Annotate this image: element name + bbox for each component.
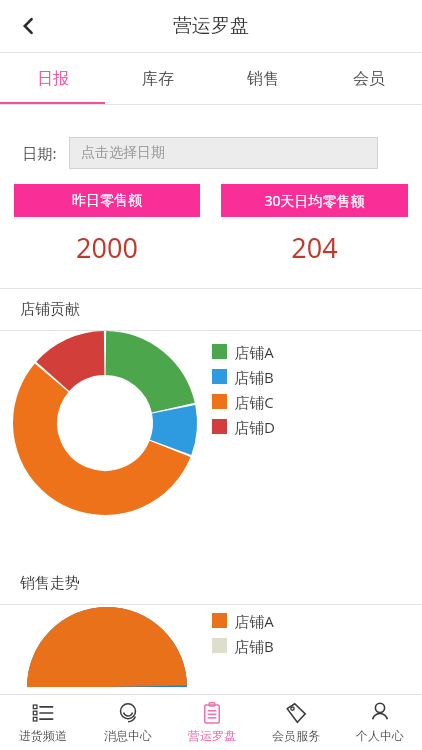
- staticText: 日期:: [22, 143, 57, 163]
- staticText: 销售: [247, 69, 279, 89]
- staticText: 点击选择日期: [81, 144, 165, 162]
- button[interactable]: 昨日零售额: [14, 184, 200, 217]
- button[interactable]: 店铺B: [212, 364, 274, 389]
- button[interactable]: 店铺D: [212, 414, 275, 439]
- staticText: 店铺D: [234, 417, 275, 437]
- button[interactable]: 日报: [0, 53, 105, 104]
- staticText: 店铺C: [234, 392, 274, 412]
- staticText: 消息中心: [104, 728, 152, 743]
- button[interactable]: 销售: [210, 53, 316, 104]
- staticText: 204: [291, 229, 338, 266]
- button[interactable]: 店铺C: [212, 389, 274, 414]
- button[interactable]: 点击选择日期: [69, 137, 378, 169]
- staticText: 库存: [142, 69, 174, 89]
- staticText: 会员: [353, 69, 385, 89]
- staticText: 会员服务: [272, 728, 320, 743]
- button[interactable]: 消息中心: [85, 695, 170, 750]
- staticText: 店铺贡献: [20, 300, 80, 319]
- staticText: 30天日均零售额: [264, 191, 365, 210]
- button[interactable]: 库存: [105, 53, 210, 104]
- button[interactable]: 个人中心: [338, 695, 422, 750]
- button[interactable]: 店铺A: [212, 608, 274, 633]
- staticText: 个人中心: [356, 728, 404, 743]
- staticText: 昨日零售额: [72, 192, 142, 210]
- button[interactable]: 会员: [316, 53, 422, 104]
- staticText: 店铺A: [234, 342, 274, 362]
- staticText: 销售走势: [20, 574, 80, 593]
- button[interactable]: 30天日均零售额: [221, 184, 408, 217]
- button[interactable]: 店铺B: [212, 633, 274, 658]
- button[interactable]: 店铺A: [212, 339, 274, 364]
- button[interactable]: 会员服务: [254, 695, 338, 750]
- staticText: 2000: [76, 229, 138, 266]
- staticText: 进货频道: [19, 728, 67, 743]
- button[interactable]: Back: [6, 4, 50, 48]
- button[interactable]: 营运罗盘: [170, 695, 254, 750]
- staticText: 营运罗盘: [173, 14, 249, 38]
- staticText: 店铺B: [234, 636, 274, 656]
- button[interactable]: 进货频道: [0, 695, 85, 750]
- staticText: 日报: [37, 69, 69, 89]
- staticText: 营运罗盘: [188, 728, 236, 743]
- staticText: 店铺B: [234, 367, 274, 387]
- staticText: 店铺A: [234, 611, 274, 631]
